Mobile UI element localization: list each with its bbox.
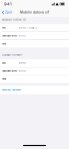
staticText: internet.t-mobile.cz xyxy=(19,27,37,29)
staticText: internet xyxy=(19,70,26,72)
button[interactable]: Uživatelské jméno xyxy=(0,67,69,75)
staticText: Zpět xyxy=(5,11,12,14)
button[interactable]: APN xyxy=(0,24,69,32)
staticText: Uživatelské jméno xyxy=(2,70,17,72)
staticText: internet xyxy=(19,62,26,64)
staticText: OSOBNÍ HOTSPOT xyxy=(2,54,22,56)
staticText: internet xyxy=(19,35,26,37)
staticText: Resetovat nastavení xyxy=(2,89,20,91)
button[interactable]: APN xyxy=(0,59,69,67)
staticText: Uživatelské jméno xyxy=(2,35,17,37)
staticText: Mobilní datová síť xyxy=(20,11,49,14)
button[interactable]: Uživatelské jméno xyxy=(0,32,69,40)
button[interactable]: Resetovat nastavení xyxy=(0,86,69,94)
button[interactable]: Zpět xyxy=(0,8,12,17)
staticText: MOBILNÍ DATOVÁ SÍŤ xyxy=(2,19,26,21)
staticText: Heslo xyxy=(2,43,6,45)
staticText: Heslo xyxy=(2,78,6,80)
staticText: APN xyxy=(2,62,6,64)
staticText: 9:41 xyxy=(4,2,12,6)
button[interactable]: Heslo xyxy=(0,40,69,48)
staticText: APN xyxy=(2,27,6,29)
button[interactable]: Heslo xyxy=(0,75,69,83)
